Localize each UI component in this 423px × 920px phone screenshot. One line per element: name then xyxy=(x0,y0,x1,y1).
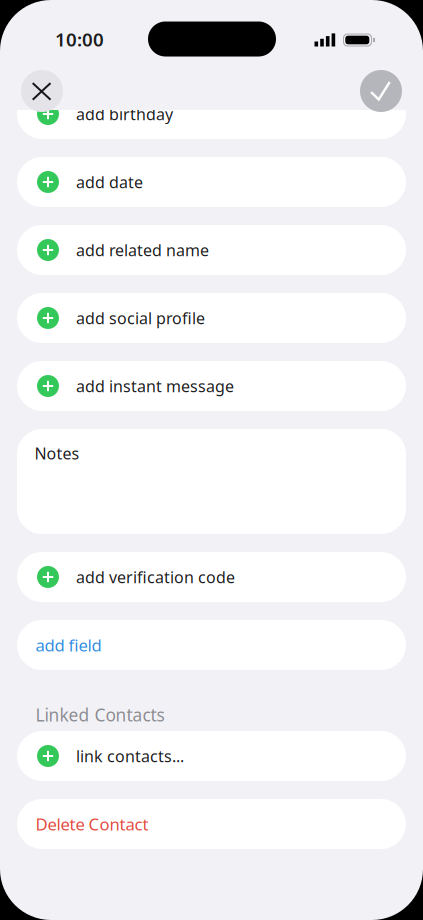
staticText: Delete Contact xyxy=(35,813,148,835)
button[interactable]: Done xyxy=(360,70,402,112)
button[interactable]: Cancel xyxy=(21,70,63,112)
staticText: link contacts... xyxy=(76,745,184,767)
staticText: add social profile xyxy=(76,307,205,329)
staticText: 10:00 xyxy=(55,26,104,52)
button[interactable]: add verification code xyxy=(17,552,406,602)
staticText: add related name xyxy=(76,239,209,261)
button[interactable]: add date xyxy=(17,157,406,207)
button[interactable]: add social profile xyxy=(17,293,406,343)
button[interactable]: add related name xyxy=(17,225,406,275)
staticText: add instant message xyxy=(76,375,234,397)
button[interactable]: link contacts... xyxy=(17,731,406,781)
button[interactable]: add field xyxy=(17,620,406,670)
button[interactable]: add instant message xyxy=(17,361,406,411)
staticText: Notes xyxy=(34,442,79,464)
staticText: add date xyxy=(76,171,143,193)
staticText: add birthday xyxy=(76,103,173,125)
staticText: Linked Contacts xyxy=(35,703,164,727)
staticText: add field xyxy=(35,634,101,656)
button[interactable]: add birthday xyxy=(17,89,406,139)
button[interactable]: Notes xyxy=(17,429,406,534)
button[interactable]: Delete Contact xyxy=(17,799,406,849)
staticText: add verification code xyxy=(76,566,235,588)
